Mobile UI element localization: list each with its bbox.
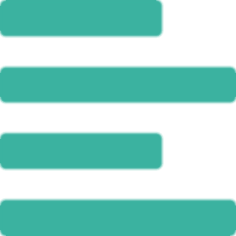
button[interactable]: Format align left	[0, 0, 236, 236]
